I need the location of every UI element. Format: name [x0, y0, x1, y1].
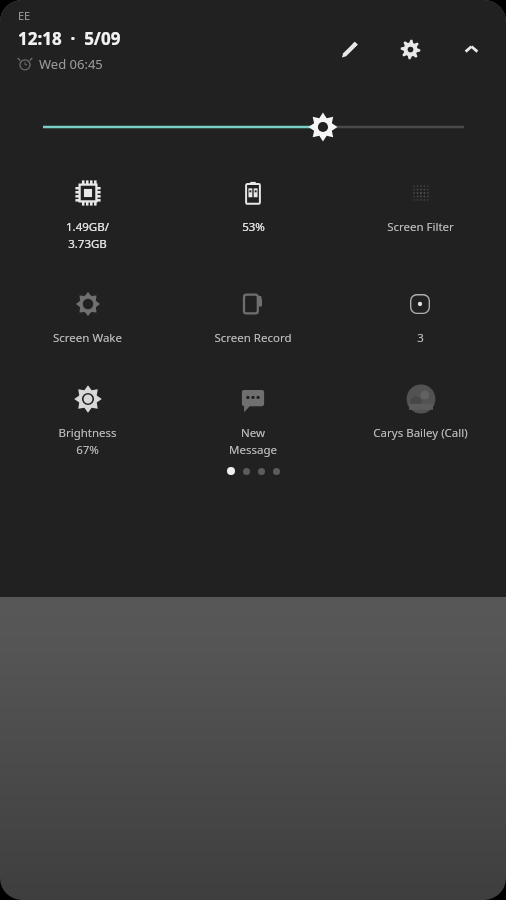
staticText: EE [18, 8, 31, 23]
button[interactable]: Settings [397, 36, 423, 62]
staticText: Wed 06:45 [39, 55, 103, 73]
button[interactable]: Carys Bailey (Call) [340, 380, 500, 441]
staticText: 12:18 · 5/09 [18, 27, 121, 50]
button[interactable]: Collapse [458, 36, 484, 62]
staticText: Screen Record [214, 330, 292, 346]
staticText: New Message [229, 425, 277, 457]
button[interactable]: Screen Wake [7, 285, 167, 346]
button[interactable]: Edit [336, 36, 362, 62]
button[interactable]: Brightness slider [0, 106, 506, 148]
button[interactable]: New Message [173, 380, 333, 457]
button[interactable]: 53% [173, 174, 333, 235]
staticText: Carys Bailey (Call) [373, 425, 468, 441]
staticText: Screen Wake [53, 330, 122, 346]
button[interactable]: Screen Filter [340, 174, 500, 235]
button[interactable]: Brightness 67% [7, 380, 167, 457]
staticText: 3 [417, 330, 424, 346]
staticText: Screen Filter [387, 219, 454, 235]
staticText: Brightness 67% [58, 425, 117, 457]
button[interactable]: Screen Record [173, 285, 333, 346]
staticText: 1.49GB/ 3.73GB [66, 219, 109, 251]
staticText: 53% [242, 219, 265, 235]
button[interactable]: 3 [340, 285, 500, 346]
button[interactable]: 1.49GB/ 3.73GB [7, 174, 167, 251]
